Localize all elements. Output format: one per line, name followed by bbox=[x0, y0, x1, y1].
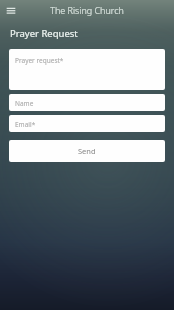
button[interactable]: Email* bbox=[9, 115, 165, 132]
staticText: Email* bbox=[15, 120, 36, 129]
staticText: Name bbox=[15, 99, 34, 108]
button[interactable]: Name bbox=[9, 94, 165, 111]
button[interactable]: Send bbox=[9, 140, 165, 162]
staticText: Prayer request* bbox=[15, 56, 64, 65]
button[interactable]: Prayer request* bbox=[9, 49, 165, 90]
button[interactable]: Open navigation menu bbox=[4, 3, 18, 17]
staticText: The Rising Church bbox=[50, 4, 124, 16]
staticText: Send bbox=[78, 146, 96, 156]
staticText: Prayer Request bbox=[10, 27, 78, 40]
